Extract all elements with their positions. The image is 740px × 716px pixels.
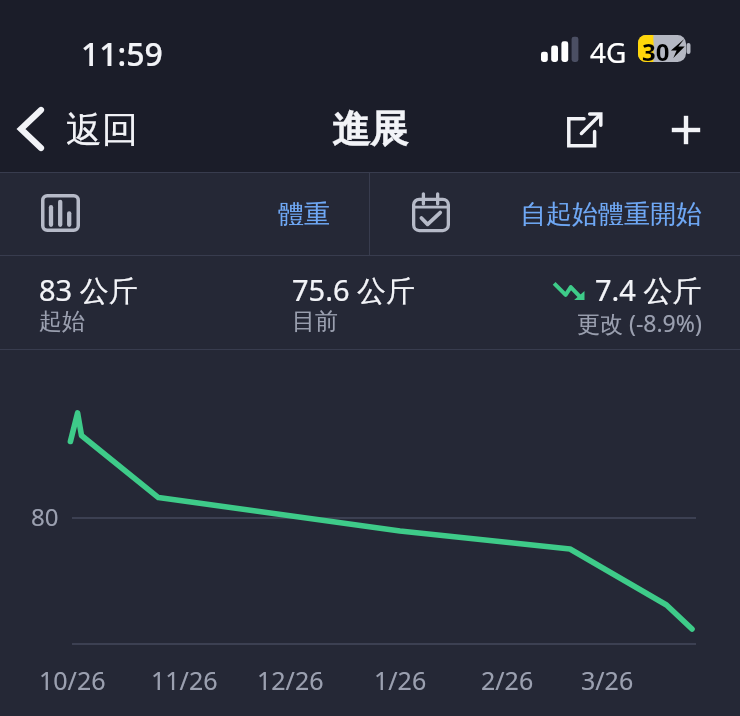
staticText: 7.4 公斤 <box>595 270 702 310</box>
staticText: 75.6 公斤 <box>292 270 416 310</box>
staticText: 返回 <box>66 107 138 152</box>
staticText: 體重 <box>278 198 330 231</box>
staticText: 30 <box>642 35 670 62</box>
staticText: 83 公斤 <box>39 270 138 310</box>
staticText: 進展 <box>0 105 740 172</box>
staticText: 4G <box>590 33 627 71</box>
staticText: 80 <box>31 500 59 533</box>
button[interactable]: 體重 <box>0 173 369 255</box>
button[interactable]: Add <box>652 96 720 164</box>
button[interactable]: Share <box>551 96 619 164</box>
staticText: 自起始體重開始 <box>520 198 702 231</box>
staticText: 2/26 <box>481 663 534 697</box>
staticText: 11:59 <box>81 32 163 76</box>
button[interactable]: 返回 <box>0 86 152 172</box>
staticText: 目前 <box>292 307 338 336</box>
staticText: 起始 <box>39 307 85 336</box>
staticText: 12/26 <box>257 663 324 697</box>
staticText: 3/26 <box>581 663 634 697</box>
button[interactable]: 自起始體重開始 <box>370 173 740 255</box>
staticText: 10/26 <box>39 663 106 697</box>
staticText: 更改 (-8.9%) <box>577 307 702 338</box>
staticText: 11/26 <box>151 663 218 697</box>
staticText: 1/26 <box>374 663 427 697</box>
